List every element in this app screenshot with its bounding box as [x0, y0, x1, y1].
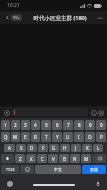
button[interactable]: More [97, 109, 104, 116]
button[interactable]: Emoji keyboard [20, 165, 34, 174]
staticText: J [75, 145, 77, 151]
staticText: B [63, 156, 66, 162]
button[interactable]: U [63, 132, 73, 142]
staticText: 5 [45, 122, 48, 128]
button[interactable]: P [96, 132, 106, 142]
staticText: M [84, 156, 89, 162]
staticText: 3 [24, 122, 27, 128]
staticText: E [24, 134, 27, 140]
button[interactable]: 1 [1, 120, 10, 130]
button[interactable]: Voice input [3, 109, 10, 116]
button[interactable]: S [16, 144, 26, 152]
staticText: X [30, 156, 33, 162]
staticText: H [63, 145, 67, 151]
button[interactable]: E [21, 132, 30, 142]
button[interactable]: L [93, 144, 103, 152]
button[interactable]: C [37, 154, 47, 163]
button[interactable]: Y [52, 132, 62, 142]
staticText: 0 [100, 122, 103, 128]
button[interactable]: 5 [41, 120, 51, 130]
button[interactable]: M [81, 154, 91, 163]
staticText: 中文 [54, 167, 62, 172]
staticText: 时代小区业主群 (180) [23, 14, 97, 22]
staticText: 9 [89, 122, 92, 128]
button[interactable]: 0 [96, 120, 106, 130]
button[interactable]: A [4, 144, 15, 152]
staticText: 1 [4, 122, 7, 128]
staticText: ?123 [6, 167, 15, 172]
button[interactable]: 2 [11, 120, 20, 130]
staticText: U [66, 134, 70, 140]
button[interactable]: X [26, 154, 36, 163]
button[interactable]: H [60, 144, 70, 152]
staticText: 99+ [13, 15, 20, 20]
button[interactable]: Back [4, 11, 23, 24]
button[interactable]: J [71, 144, 81, 152]
staticText: I [78, 134, 80, 140]
button[interactable]: F [38, 144, 48, 152]
staticText: 发送 [90, 167, 98, 172]
staticText: V [52, 156, 55, 162]
staticText: W [13, 134, 18, 140]
button[interactable]: 7 [63, 120, 73, 130]
button[interactable]: ?123 [1, 165, 19, 174]
button[interactable]: Backspace [92, 154, 106, 163]
button[interactable]: R [31, 132, 40, 142]
staticText: N [73, 156, 77, 162]
button[interactable]: D [27, 144, 37, 152]
button[interactable]: T [41, 132, 51, 142]
staticText: F [42, 145, 45, 151]
staticText: P [100, 134, 103, 140]
button[interactable]: 9 [85, 120, 95, 130]
button[interactable]: 4 [31, 120, 40, 130]
staticText: C [41, 156, 44, 162]
staticText: K [86, 145, 89, 151]
staticText: 7 [67, 122, 70, 128]
button[interactable]: 6 [52, 120, 62, 130]
button[interactable]: Q [1, 132, 10, 142]
staticText: L [97, 145, 100, 151]
button[interactable]: I [74, 132, 84, 142]
button[interactable]: 发送 [82, 165, 106, 174]
staticText: 6 [56, 122, 59, 128]
button[interactable]: Keyboard settings [6, 180, 13, 187]
button[interactable]: K [82, 144, 92, 152]
button[interactable]: B [59, 154, 69, 163]
button[interactable]: Voice typing [94, 180, 101, 187]
button[interactable]: G [49, 144, 59, 152]
button[interactable]: W [11, 132, 20, 142]
button[interactable]: O [85, 132, 95, 142]
button[interactable]: N [70, 154, 80, 163]
staticText: Q [4, 134, 8, 140]
staticText: S [20, 145, 23, 151]
staticText: 4 [34, 122, 37, 128]
staticText: O [88, 134, 92, 140]
button[interactable]: V [48, 154, 58, 163]
staticText: T [45, 134, 48, 140]
button[interactable]: 3 [21, 120, 30, 130]
staticText: 10:21 [7, 2, 20, 9]
staticText: Y [56, 134, 59, 140]
staticText: R [34, 134, 37, 140]
staticText: A [8, 145, 11, 151]
staticText: 2 [14, 122, 17, 128]
button[interactable]: Z [15, 154, 25, 163]
staticText: Z [19, 156, 22, 162]
staticText: G [52, 145, 56, 151]
button[interactable]: Emoji [90, 109, 97, 116]
staticText: D [30, 145, 34, 151]
button[interactable] [12, 108, 88, 116]
button[interactable]: 中文 [35, 165, 81, 174]
button[interactable]: More options [97, 11, 103, 24]
button[interactable]: Shift [1, 154, 14, 163]
button[interactable]: 8 [74, 120, 84, 130]
staticText: 8 [78, 122, 81, 128]
